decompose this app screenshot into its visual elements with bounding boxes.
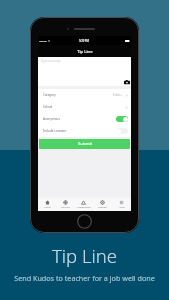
button[interactable]: School	[38, 101, 131, 113]
button[interactable]: Home	[38, 198, 56, 211]
button[interactable]: Anonymous	[38, 113, 131, 125]
button[interactable]: Submit	[39, 139, 130, 149]
button[interactable]: More	[112, 198, 131, 211]
button[interactable]: Attach photo	[124, 79, 130, 85]
button[interactable]: Notifications	[74, 198, 93, 211]
button[interactable]: Category	[38, 89, 131, 101]
staticText: Tip Line	[61, 206, 70, 209]
button[interactable]: Settings	[93, 198, 112, 211]
staticText: Carrier	[39, 39, 47, 42]
staticText: More	[119, 206, 125, 209]
staticText: Include Location	[43, 129, 67, 133]
staticText: Anonymous	[43, 117, 60, 121]
button[interactable]: Tip Line	[56, 198, 74, 211]
staticText: Settings	[98, 206, 107, 209]
staticText: Submit	[78, 141, 92, 147]
button[interactable]: Include Location	[38, 125, 131, 137]
staticText: Enter...	[113, 93, 123, 97]
staticText: Send Kudos to teacher for a job well don…	[0, 273, 169, 283]
staticText: Category	[43, 93, 56, 97]
staticText: Tip Line	[0, 243, 169, 268]
button[interactable]: On	[116, 116, 128, 122]
staticText: 9:29 PM	[79, 39, 89, 43]
staticText: Home	[44, 206, 51, 209]
staticText: School	[43, 105, 53, 109]
staticText: Type message	[41, 59, 62, 63]
staticText: Tip Line	[77, 48, 93, 54]
button[interactable]: Off	[116, 128, 128, 134]
staticText: Notifications	[77, 206, 91, 209]
